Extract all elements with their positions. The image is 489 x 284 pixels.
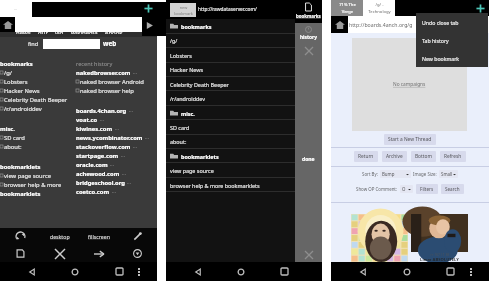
button[interactable]: Undo close tab bbox=[416, 13, 488, 31]
button[interactable]: naked browser help bbox=[76, 86, 157, 95]
button[interactable]: startpage.com bbox=[76, 151, 157, 160]
button[interactable]: done bbox=[302, 156, 315, 163]
button[interactable]: fillscreen bbox=[79, 228, 118, 245]
button[interactable]: vid bbox=[55, 29, 64, 34]
button[interactable]: Refresh bbox=[440, 151, 466, 162]
button[interactable]: wikipedia bbox=[71, 29, 98, 34]
button[interactable]: view page source bbox=[0, 171, 76, 180]
button[interactable]: naked browser Android bbox=[76, 77, 157, 86]
button[interactable]: Bump order bbox=[380, 170, 411, 178]
button[interactable]: Home bbox=[64, 262, 86, 281]
button[interactable]: news bbox=[16, 29, 31, 34]
button[interactable]: misc. bbox=[0, 124, 15, 133]
button[interactable]: Celebrity Death Beeper bbox=[166, 77, 322, 91]
button[interactable]: Filters bbox=[416, 184, 438, 194]
button[interactable]: Dismiss bbox=[302, 248, 315, 261]
button[interactable]: Save bbox=[0, 245, 40, 262]
button[interactable]: bridgeschool.org bbox=[76, 178, 157, 187]
button[interactable]: kiwines.com bbox=[76, 124, 157, 133]
button[interactable]: Thread image bbox=[411, 214, 468, 252]
button[interactable]: achewood.com bbox=[76, 169, 157, 178]
button[interactable]: Small bbox=[439, 170, 458, 178]
button[interactable]: More options bbox=[131, 262, 147, 281]
button[interactable]: misc. bbox=[166, 106, 322, 120]
button[interactable]: find bbox=[28, 40, 39, 48]
button[interactable]: bookmarklets bbox=[0, 189, 41, 198]
button[interactable]: New tab bbox=[144, 4, 153, 13]
button[interactable]: Go bbox=[142, 17, 156, 34]
button[interactable]: Close bbox=[302, 44, 315, 57]
button[interactable]: bookmarklets bbox=[0, 162, 41, 171]
button[interactable]: Downloads bbox=[118, 245, 157, 262]
button[interactable]: browser help & more bookmarklets bbox=[166, 178, 322, 192]
staticText: >> 167 / 1 38 bbox=[411, 253, 468, 257]
button[interactable]: Recents bbox=[108, 262, 130, 281]
button[interactable]: stackoverflow.com bbox=[76, 142, 157, 151]
button[interactable]: /g/ bbox=[166, 33, 322, 47]
button[interactable]: bookmarks bbox=[166, 19, 322, 33]
button[interactable]: Settings bbox=[118, 228, 157, 245]
button[interactable]: Back bbox=[187, 262, 209, 281]
button[interactable]: Start a New Thread bbox=[384, 134, 436, 145]
button[interactable]: Bottom bbox=[411, 151, 436, 162]
button[interactable]: web bbox=[103, 39, 117, 48]
button[interactable]: Refresh bbox=[0, 228, 40, 245]
button[interactable]: history bbox=[295, 26, 322, 41]
button[interactable]: Thread image bbox=[351, 214, 408, 262]
button[interactable]: Back bbox=[21, 262, 43, 281]
button[interactable]: gur bbox=[38, 29, 48, 34]
button[interactable]: voat.co bbox=[76, 115, 157, 124]
button[interactable]: browser help & more bbox=[0, 180, 76, 189]
button[interactable]: new bookmark bbox=[170, 3, 196, 17]
button[interactable]: boards.4chan.org bbox=[76, 106, 157, 115]
button[interactable]: view page source bbox=[166, 163, 322, 177]
button[interactable]: Home bbox=[396, 262, 418, 281]
button[interactable]: bookmarklets bbox=[166, 149, 322, 163]
button[interactable]: about: bbox=[166, 134, 322, 148]
button[interactable]: New bookmark bbox=[416, 49, 488, 67]
staticText: Filters bbox=[420, 186, 434, 192]
button[interactable]: Home bbox=[331, 16, 348, 33]
staticText: about: bbox=[4, 143, 22, 151]
button[interactable]: /g/ - Technology bbox=[363, 0, 395, 16]
button[interactable]: bookmarks bbox=[295, 0, 322, 23]
button[interactable]: coetco.com bbox=[76, 187, 157, 196]
button[interactable]: ebook bbox=[105, 29, 123, 34]
button[interactable]: oracle.com bbox=[76, 160, 157, 169]
button[interactable]: Search bbox=[441, 184, 464, 194]
button[interactable]: bookmarks bbox=[0, 59, 33, 68]
button[interactable]: Back bbox=[352, 262, 374, 281]
button[interactable]: Recents bbox=[439, 262, 461, 281]
button[interactable]: Celebrity Death Beeper bbox=[0, 95, 76, 104]
button[interactable]: More options bbox=[463, 262, 479, 281]
button[interactable]: /r/androiddev bbox=[0, 104, 76, 113]
button[interactable]: SD card bbox=[0, 133, 76, 142]
button[interactable]: Lobsters bbox=[166, 48, 322, 62]
button[interactable]: Return bbox=[354, 151, 378, 162]
button[interactable]: New tab bbox=[476, 4, 485, 13]
button[interactable]: recent history bbox=[76, 59, 113, 68]
button[interactable]: desktop bbox=[40, 228, 79, 245]
button[interactable]: Hacker News bbox=[0, 86, 76, 95]
button[interactable]: 71% The Verge bbox=[331, 0, 363, 16]
button[interactable]: Close bbox=[40, 245, 79, 262]
button[interactable]: nakedbrowser.com bbox=[76, 68, 157, 77]
button[interactable] bbox=[32, 2, 189, 18]
button[interactable]: Home bbox=[230, 262, 252, 281]
button[interactable]: Tab history bbox=[416, 31, 488, 49]
button[interactable]: Forward bbox=[79, 245, 118, 262]
button[interactable]: SD card bbox=[166, 120, 322, 134]
button[interactable]: about: bbox=[0, 142, 76, 151]
button[interactable]: news.ycombinator.com bbox=[76, 133, 157, 142]
button[interactable]: Lobsters bbox=[0, 77, 76, 86]
button[interactable]: Archive bbox=[382, 151, 407, 162]
button[interactable]: Home bbox=[0, 17, 15, 32]
button[interactable]: /g/ bbox=[0, 68, 76, 77]
button[interactable]: Recents bbox=[273, 262, 295, 281]
button[interactable]: /r/androiddev bbox=[166, 91, 322, 105]
button[interactable]: On bbox=[400, 185, 413, 193]
button[interactable]: Hacker News bbox=[166, 62, 322, 76]
